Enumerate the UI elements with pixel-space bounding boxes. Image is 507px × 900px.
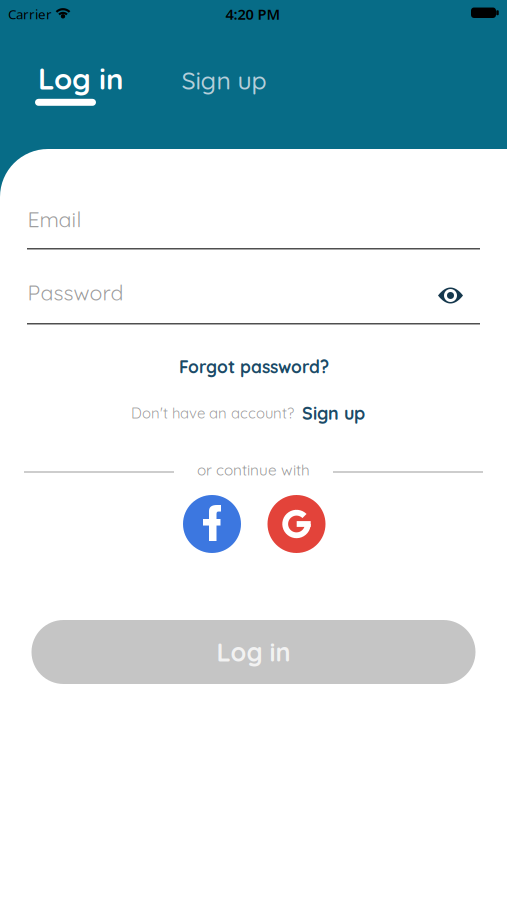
button[interactable]: Sign up: [302, 402, 365, 424]
staticText: Sign up: [181, 65, 266, 96]
staticText: Sign up: [302, 402, 365, 424]
button[interactable]: Continue with Facebook: [183, 495, 241, 553]
staticText: Password: [27, 279, 123, 306]
staticText: Don't have an account?: [131, 404, 294, 422]
button[interactable]: Sign up: [181, 65, 266, 96]
staticText: Carrier: [8, 5, 52, 23]
button[interactable]: Show password: [437, 280, 464, 310]
staticText: Log in: [216, 636, 290, 668]
button[interactable]: Forgot password?: [179, 356, 329, 378]
staticText: Forgot password?: [179, 356, 329, 378]
button[interactable]: Log in: [38, 60, 123, 106]
staticText: or continue with: [197, 460, 310, 479]
staticText: 4:20 PM: [225, 4, 280, 24]
staticText: Log in: [38, 60, 123, 97]
button[interactable]: Log in: [31, 620, 475, 684]
button[interactable]: Continue with Google: [267, 495, 325, 553]
staticText: Email: [27, 206, 81, 233]
